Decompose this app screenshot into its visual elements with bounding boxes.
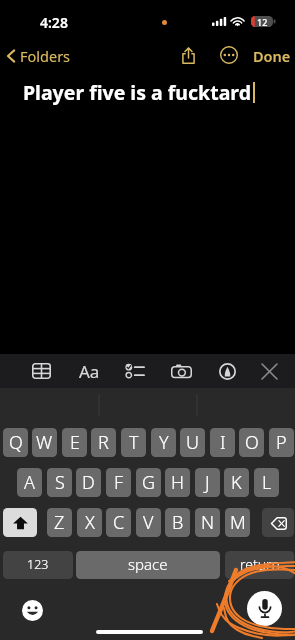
- staticText: space: [128, 554, 168, 574]
- staticText: E: [70, 430, 80, 455]
- staticText: Q: [9, 430, 23, 455]
- button[interactable]: S: [47, 468, 72, 497]
- button[interactable]: L: [254, 468, 279, 497]
- button[interactable]: Text format: [73, 355, 105, 387]
- button[interactable]: Dictation: [247, 591, 282, 626]
- staticText: O: [245, 430, 259, 455]
- staticText: N: [201, 510, 215, 535]
- staticText: 12: [257, 16, 268, 27]
- staticText: Done: [253, 46, 291, 66]
- button[interactable]: B: [165, 508, 190, 537]
- button[interactable]: Z: [47, 508, 72, 537]
- button[interactable]: Folders: [4, 44, 74, 68]
- staticText: D: [82, 470, 95, 495]
- button[interactable]: Table: [25, 355, 57, 387]
- staticText: Z: [54, 510, 65, 535]
- staticText: P: [276, 430, 287, 455]
- button[interactable]: 123: [3, 551, 73, 579]
- staticText: M: [230, 510, 246, 535]
- button[interactable]: F: [106, 468, 131, 497]
- staticText: U: [186, 430, 199, 455]
- staticText: X: [85, 510, 95, 535]
- staticText: return: [240, 555, 280, 574]
- button[interactable]: H: [165, 468, 190, 497]
- button[interactable]: A: [17, 468, 42, 497]
- button[interactable]: Y: [151, 428, 176, 457]
- button[interactable]: N: [195, 508, 220, 537]
- staticText: C: [113, 510, 125, 535]
- button[interactable]: I: [210, 428, 235, 457]
- button[interactable]: R: [91, 428, 116, 457]
- button[interactable]: More options: [216, 42, 242, 68]
- button[interactable]: Checklist: [118, 355, 150, 387]
- staticText: W: [36, 430, 53, 455]
- staticText: R: [98, 430, 109, 455]
- button[interactable]: Markup: [211, 355, 243, 387]
- button[interactable]: Backspace: [262, 508, 294, 537]
- button[interactable]: E: [62, 428, 87, 457]
- button[interactable]: Done: [250, 44, 294, 68]
- button[interactable]: P: [269, 428, 294, 457]
- button[interactable]: K: [224, 468, 249, 497]
- staticText: 123: [27, 556, 49, 573]
- staticText: A: [24, 470, 35, 495]
- button[interactable]: Hide keyboard: [253, 355, 285, 387]
- staticText: V: [143, 510, 154, 535]
- button[interactable]: W: [32, 428, 57, 457]
- button[interactable]: Emoji: [22, 600, 43, 621]
- button[interactable]: X: [77, 508, 102, 537]
- button[interactable]: return: [225, 551, 294, 579]
- button[interactable]: O: [239, 428, 264, 457]
- staticText: G: [142, 470, 156, 495]
- staticText: F: [114, 470, 124, 495]
- button[interactable]: space: [76, 551, 220, 579]
- staticText: Folders: [20, 46, 71, 66]
- staticText: 4:28: [40, 13, 68, 32]
- staticText: J: [205, 470, 210, 495]
- button[interactable]: C: [106, 508, 131, 537]
- staticText: Aa: [79, 360, 100, 383]
- staticText: H: [171, 470, 185, 495]
- staticText: Player five is a fucktard: [23, 79, 251, 106]
- button[interactable]: Camera: [165, 355, 197, 387]
- button[interactable]: Q: [3, 428, 28, 457]
- button[interactable]: Shift: [3, 508, 37, 537]
- button[interactable]: D: [76, 468, 101, 497]
- button[interactable]: Share: [175, 42, 201, 68]
- button[interactable]: M: [225, 508, 250, 537]
- staticText: L: [262, 470, 272, 495]
- button[interactable]: G: [136, 468, 161, 497]
- staticText: K: [231, 470, 242, 495]
- button[interactable]: U: [180, 428, 205, 457]
- button[interactable]: V: [136, 508, 161, 537]
- staticText: B: [172, 510, 184, 535]
- staticText: I: [220, 430, 226, 455]
- button[interactable]: T: [121, 428, 146, 457]
- staticText: T: [129, 430, 139, 455]
- staticText: Y: [159, 430, 169, 455]
- button[interactable]: J: [195, 468, 220, 497]
- staticText: S: [55, 470, 65, 495]
